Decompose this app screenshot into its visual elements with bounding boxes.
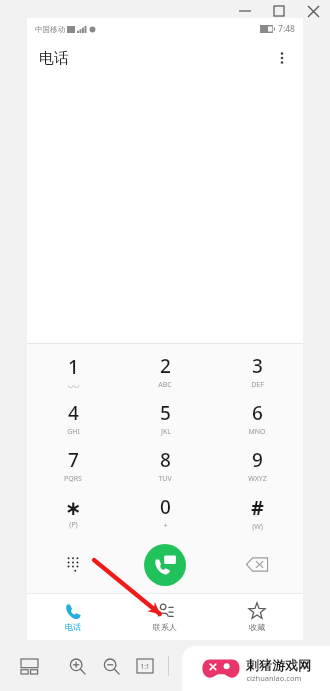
button[interactable]: Backspace [211, 536, 303, 593]
button[interactable]: 6 [211, 395, 303, 442]
button[interactable]: 1 [27, 348, 119, 395]
button[interactable]: Zoom in [62, 651, 92, 681]
staticText: WXYZ [248, 474, 267, 484]
staticText: 9 [252, 447, 263, 473]
staticText: 4 [68, 400, 79, 426]
staticText: 5 [160, 400, 171, 426]
staticText: JKL [161, 427, 171, 437]
button[interactable]: Hide keypad [27, 536, 119, 593]
button[interactable]: 收藏 [211, 594, 303, 640]
button[interactable]: More options [267, 43, 297, 73]
button[interactable]: 4 [27, 395, 119, 442]
staticText: 电话 [65, 622, 81, 632]
staticText: 0 [160, 494, 171, 520]
staticText: 电话 [39, 49, 69, 68]
button[interactable]: Layout [14, 651, 44, 681]
staticText: GHI [67, 427, 80, 437]
staticText: 中国移动 [35, 25, 65, 34]
button[interactable]: Minimize [228, 0, 262, 22]
button[interactable]: Call [144, 544, 186, 586]
button[interactable]: Zoom out [96, 651, 126, 681]
button[interactable]: 2 [119, 348, 211, 395]
button[interactable]: Close [296, 0, 330, 22]
staticText: 刺猪游戏网 [246, 657, 311, 673]
staticText: 2 [160, 353, 171, 379]
button[interactable]: 7 [27, 442, 119, 489]
staticText: ∗ [65, 496, 82, 519]
staticText: 8 [160, 447, 171, 473]
staticText: 7:48 [278, 23, 295, 35]
staticText: 收藏 [249, 622, 265, 632]
staticText: ◡◡ [67, 381, 80, 389]
staticText: 1 [68, 354, 79, 380]
staticText: cizhuanlao.com [246, 673, 302, 683]
staticText: 6 [252, 400, 263, 426]
staticText: MNO [248, 427, 266, 437]
button[interactable]: Actual size [130, 651, 160, 681]
staticText: PQRS [64, 474, 82, 484]
staticText: (W) [252, 522, 263, 532]
staticText: 7 [68, 447, 79, 473]
button[interactable]: 电话 [27, 594, 119, 640]
button[interactable]: 5 [119, 395, 211, 442]
staticText: 1:1 [140, 662, 150, 671]
button[interactable]: Rotate [177, 651, 207, 681]
button[interactable]: Maximize [262, 0, 296, 22]
button[interactable]: 9 [211, 442, 303, 489]
staticText: DEF [251, 380, 264, 390]
staticText: ABC [158, 380, 172, 390]
staticText: # [251, 494, 264, 521]
staticText: (P) [69, 520, 78, 530]
button[interactable]: 0 [119, 489, 211, 536]
staticText: + [163, 521, 168, 531]
button[interactable]: # [211, 489, 303, 536]
staticText: 3 [252, 353, 263, 379]
button[interactable]: 联系人 [119, 594, 211, 640]
staticText: TUV [158, 474, 172, 484]
button[interactable]: 3 [211, 348, 303, 395]
staticText: 联系人 [153, 622, 177, 632]
button[interactable]: ∗ [27, 489, 119, 536]
button[interactable]: 8 [119, 442, 211, 489]
